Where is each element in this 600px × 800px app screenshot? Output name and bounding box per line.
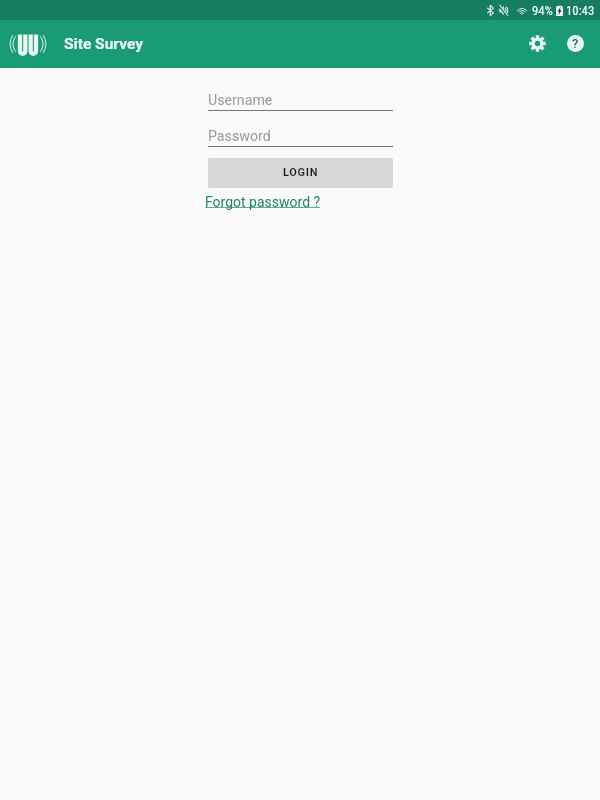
staticText: ?	[572, 36, 579, 51]
button[interactable]: Settings	[518, 20, 556, 68]
button[interactable]: Password	[208, 125, 393, 147]
staticText: 10:43	[566, 3, 595, 18]
staticText: Username	[208, 92, 273, 109]
staticText: Forgot password ?	[205, 194, 321, 210]
staticText: LOGIN	[283, 166, 319, 179]
button[interactable]: LOGIN	[208, 158, 393, 187]
button[interactable]: Forgot password ?	[205, 193, 321, 211]
button[interactable]: Username	[208, 89, 393, 111]
button[interactable]: Help	[556, 20, 594, 68]
staticText: Site Survey	[64, 35, 143, 53]
staticText: 94%	[532, 3, 553, 18]
staticText: Password	[208, 128, 271, 145]
